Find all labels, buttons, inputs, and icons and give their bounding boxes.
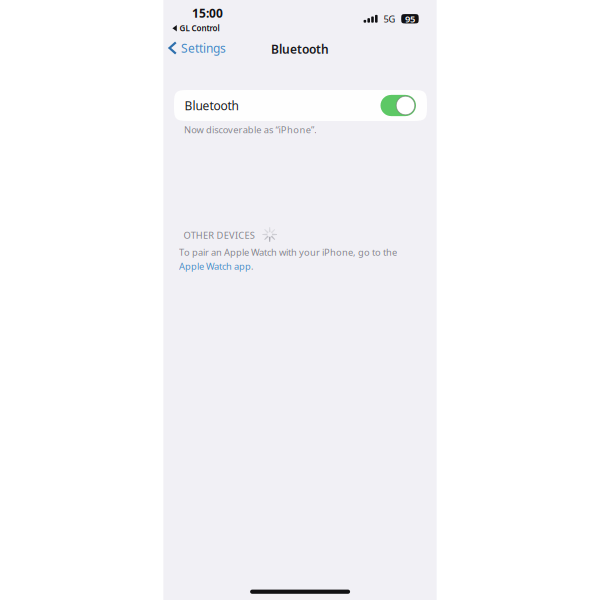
staticText: 5G	[383, 12, 395, 25]
staticText: GL Control	[179, 23, 219, 34]
staticText: Apple Watch app	[179, 260, 251, 272]
button[interactable]: Apple Watch app	[179, 260, 251, 272]
staticText: Now discoverable as “iPhone”.	[184, 123, 317, 136]
staticText: Settings	[181, 40, 226, 56]
button[interactable]: Bluetooth	[174, 90, 427, 121]
staticText: .	[251, 260, 254, 272]
button[interactable]: Settings	[163, 37, 234, 59]
staticText: To pair an Apple Watch with your iPhone,…	[179, 246, 397, 258]
staticText: 15:00	[192, 5, 223, 21]
staticText: Bluetooth	[184, 97, 238, 113]
staticText: OTHER DEVICES	[183, 229, 255, 241]
staticText: Bluetooth	[271, 41, 329, 57]
staticText: 95	[405, 12, 415, 25]
